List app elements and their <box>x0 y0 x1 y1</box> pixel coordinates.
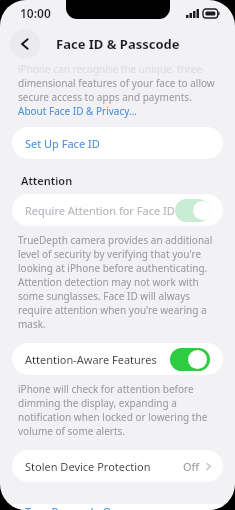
staticText: iPhone can recognise the unique, three- <box>18 62 206 76</box>
staticText: Face ID & Passcode <box>56 35 180 53</box>
staticText: Require Attention for Face ID <box>25 203 175 218</box>
button[interactable]: Turn Passcode On <box>12 504 223 510</box>
button[interactable]: Stolen Device Protection <box>12 450 223 482</box>
staticText: TrueDepth camera provides an additional … <box>18 233 219 331</box>
button[interactable]: Toggle <box>170 348 210 371</box>
staticText: Turn Passcode On <box>25 504 119 510</box>
button[interactable]: Require Attention for Face ID <box>12 194 223 226</box>
staticText: dimensional features of your face to all… <box>18 76 221 118</box>
button[interactable]: Back <box>10 29 40 59</box>
staticText: Set Up Face ID <box>25 136 100 151</box>
staticText: Attention-Aware Features <box>25 352 157 367</box>
staticText: Off <box>183 459 200 474</box>
button[interactable]: Attention-Aware Features <box>12 343 223 375</box>
staticText: Attention <box>21 173 73 188</box>
staticText: iPhone will check for attention before d… <box>18 382 219 438</box>
staticText: Stolen Device Protection <box>25 459 151 474</box>
staticText: 10:00 <box>20 5 51 21</box>
button[interactable]: Toggle <box>175 199 210 222</box>
button[interactable]: Set Up Face ID <box>12 127 223 159</box>
